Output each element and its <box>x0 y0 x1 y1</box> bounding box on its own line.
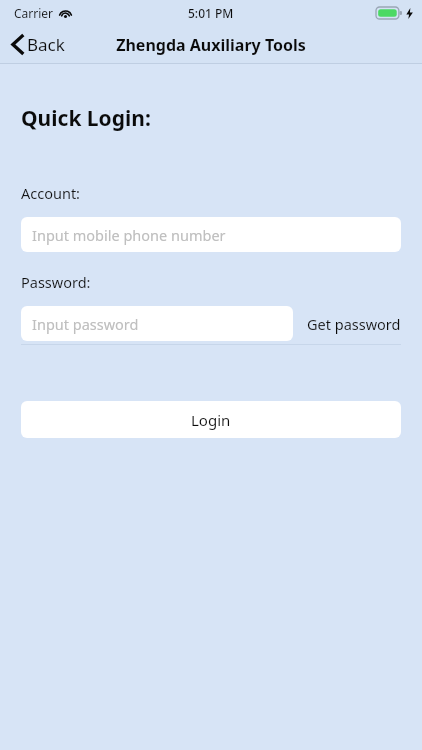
staticText: Account: <box>21 183 81 203</box>
staticText: 5:01 PM <box>188 5 234 21</box>
button[interactable]: Get password <box>293 306 401 341</box>
button[interactable]: Input mobile phone number <box>21 217 401 252</box>
staticText: Quick Login: <box>21 104 151 133</box>
button[interactable]: Input password <box>21 306 293 341</box>
button[interactable]: Back <box>0 25 75 64</box>
staticText: Password: <box>21 272 91 292</box>
button[interactable]: Login <box>21 401 401 438</box>
staticText: Carrier <box>14 5 54 21</box>
staticText: Get password <box>307 314 401 334</box>
staticText: Back <box>27 33 65 56</box>
staticText: Zhengda Auxiliary Tools <box>116 34 306 56</box>
staticText: Input mobile phone number <box>32 225 226 245</box>
staticText: Input password <box>32 314 139 334</box>
staticText: Login <box>191 410 231 430</box>
